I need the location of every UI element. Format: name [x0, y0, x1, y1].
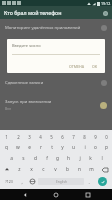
staticText: 6	[61, 134, 64, 140]
staticText: 9	[94, 134, 97, 140]
button[interactable]: t	[46, 142, 57, 153]
staticText: y	[61, 144, 64, 151]
staticText: d	[34, 155, 37, 162]
staticText: t	[51, 144, 53, 151]
button[interactable]: Menu	[101, 9, 109, 17]
button[interactable]: q	[0, 142, 12, 153]
button[interactable]: Recents	[81, 189, 95, 200]
button[interactable]: 6	[57, 131, 68, 142]
button[interactable]: 8	[79, 131, 90, 142]
staticText: j	[79, 155, 81, 162]
button[interactable]: s	[17, 153, 29, 164]
button[interactable]: ОТМЕНА	[67, 63, 87, 70]
button[interactable]: g	[52, 153, 63, 164]
button[interactable]: 5	[46, 131, 57, 142]
button[interactable]: k	[85, 153, 96, 164]
staticText: g	[56, 155, 59, 162]
button[interactable]: Back	[18, 189, 32, 200]
staticText: m	[89, 166, 94, 173]
button[interactable]: ОК	[90, 63, 100, 70]
staticText: 19:12	[101, 1, 111, 6]
button[interactable]: p	[101, 142, 112, 153]
staticText: 8	[83, 134, 86, 140]
button[interactable]: 7	[68, 131, 79, 142]
button[interactable]: Change language	[27, 175, 38, 188]
staticText: o	[94, 144, 97, 151]
button[interactable]: 4	[35, 131, 46, 142]
button[interactable]: n	[73, 164, 85, 175]
staticText: ОТМЕНА	[69, 64, 85, 69]
staticText: u	[72, 144, 75, 151]
staticText: i	[84, 144, 86, 151]
button[interactable]: u	[68, 142, 79, 153]
staticText: k	[89, 155, 92, 162]
button[interactable]: Backspace	[97, 164, 112, 175]
button[interactable]: Space	[38, 178, 84, 185]
staticText: b	[66, 166, 69, 173]
staticText: 0	[105, 134, 108, 140]
staticText: w	[16, 144, 20, 151]
staticText: 1	[5, 134, 8, 140]
staticText: e	[28, 144, 31, 151]
staticText: .	[88, 179, 90, 185]
button[interactable]: ,	[17, 175, 27, 188]
staticText: 5	[50, 134, 53, 140]
staticText: Мониторинг удалённых приложений	[5, 25, 101, 31]
button[interactable]: f	[41, 153, 52, 164]
staticText: c	[42, 166, 45, 173]
staticText: a	[10, 155, 13, 162]
staticText: Кто брал мой телефон	[4, 9, 62, 16]
button[interactable]: Home	[49, 189, 63, 200]
button[interactable]: i	[79, 142, 90, 153]
button[interactable]: 2	[12, 131, 24, 142]
button[interactable]: w	[12, 142, 24, 153]
staticText: h	[67, 155, 70, 162]
staticText: ОК	[92, 64, 98, 69]
button[interactable]: b	[61, 164, 73, 175]
button[interactable]: z	[14, 164, 25, 175]
button[interactable]: m	[85, 164, 97, 175]
staticText: s	[22, 155, 25, 162]
staticText: 2	[17, 134, 20, 140]
button[interactable]: Shift	[0, 164, 14, 175]
button[interactable]: Сдвоенные записи	[5, 76, 107, 90]
staticText: l	[101, 155, 103, 162]
staticText: 4	[39, 134, 42, 140]
staticText: Введите число	[12, 43, 41, 48]
button[interactable]: l	[96, 153, 107, 164]
button[interactable]: o	[90, 142, 101, 153]
button[interactable]: ?123	[1, 175, 17, 188]
staticText: English	[56, 180, 67, 184]
button[interactable]: 1	[0, 131, 12, 142]
button[interactable]: Enter	[98, 177, 107, 186]
staticText: 7	[72, 134, 75, 140]
staticText: p	[105, 144, 108, 151]
button[interactable]: e	[24, 142, 35, 153]
staticText: Сдвоенные записи	[5, 80, 101, 86]
button[interactable]: Мониторинг удалённых приложений	[5, 21, 107, 35]
staticText: x	[30, 166, 33, 173]
button[interactable]: r	[35, 142, 46, 153]
button[interactable]: 3	[24, 131, 35, 142]
button[interactable]: x	[25, 164, 37, 175]
button[interactable]: a	[5, 153, 17, 164]
staticText: f	[46, 155, 48, 162]
staticText: n	[78, 166, 81, 173]
button[interactable]: 0	[101, 131, 112, 142]
button[interactable]: 9	[90, 131, 101, 142]
button[interactable]: y	[57, 142, 68, 153]
staticText: ?123	[5, 179, 13, 184]
staticText: v	[54, 166, 57, 173]
staticText: q	[5, 144, 8, 151]
staticText: 3	[28, 134, 31, 140]
button[interactable]: Запуск при включении	[5, 96, 107, 114]
button[interactable]: c	[37, 164, 49, 175]
button[interactable]: j	[74, 153, 85, 164]
staticText: Запуск при включении	[5, 99, 52, 105]
staticText: ,	[21, 179, 23, 185]
button[interactable]: h	[63, 153, 74, 164]
button[interactable]: v	[49, 164, 61, 175]
staticText: z	[18, 166, 21, 173]
button[interactable]: d	[29, 153, 41, 164]
